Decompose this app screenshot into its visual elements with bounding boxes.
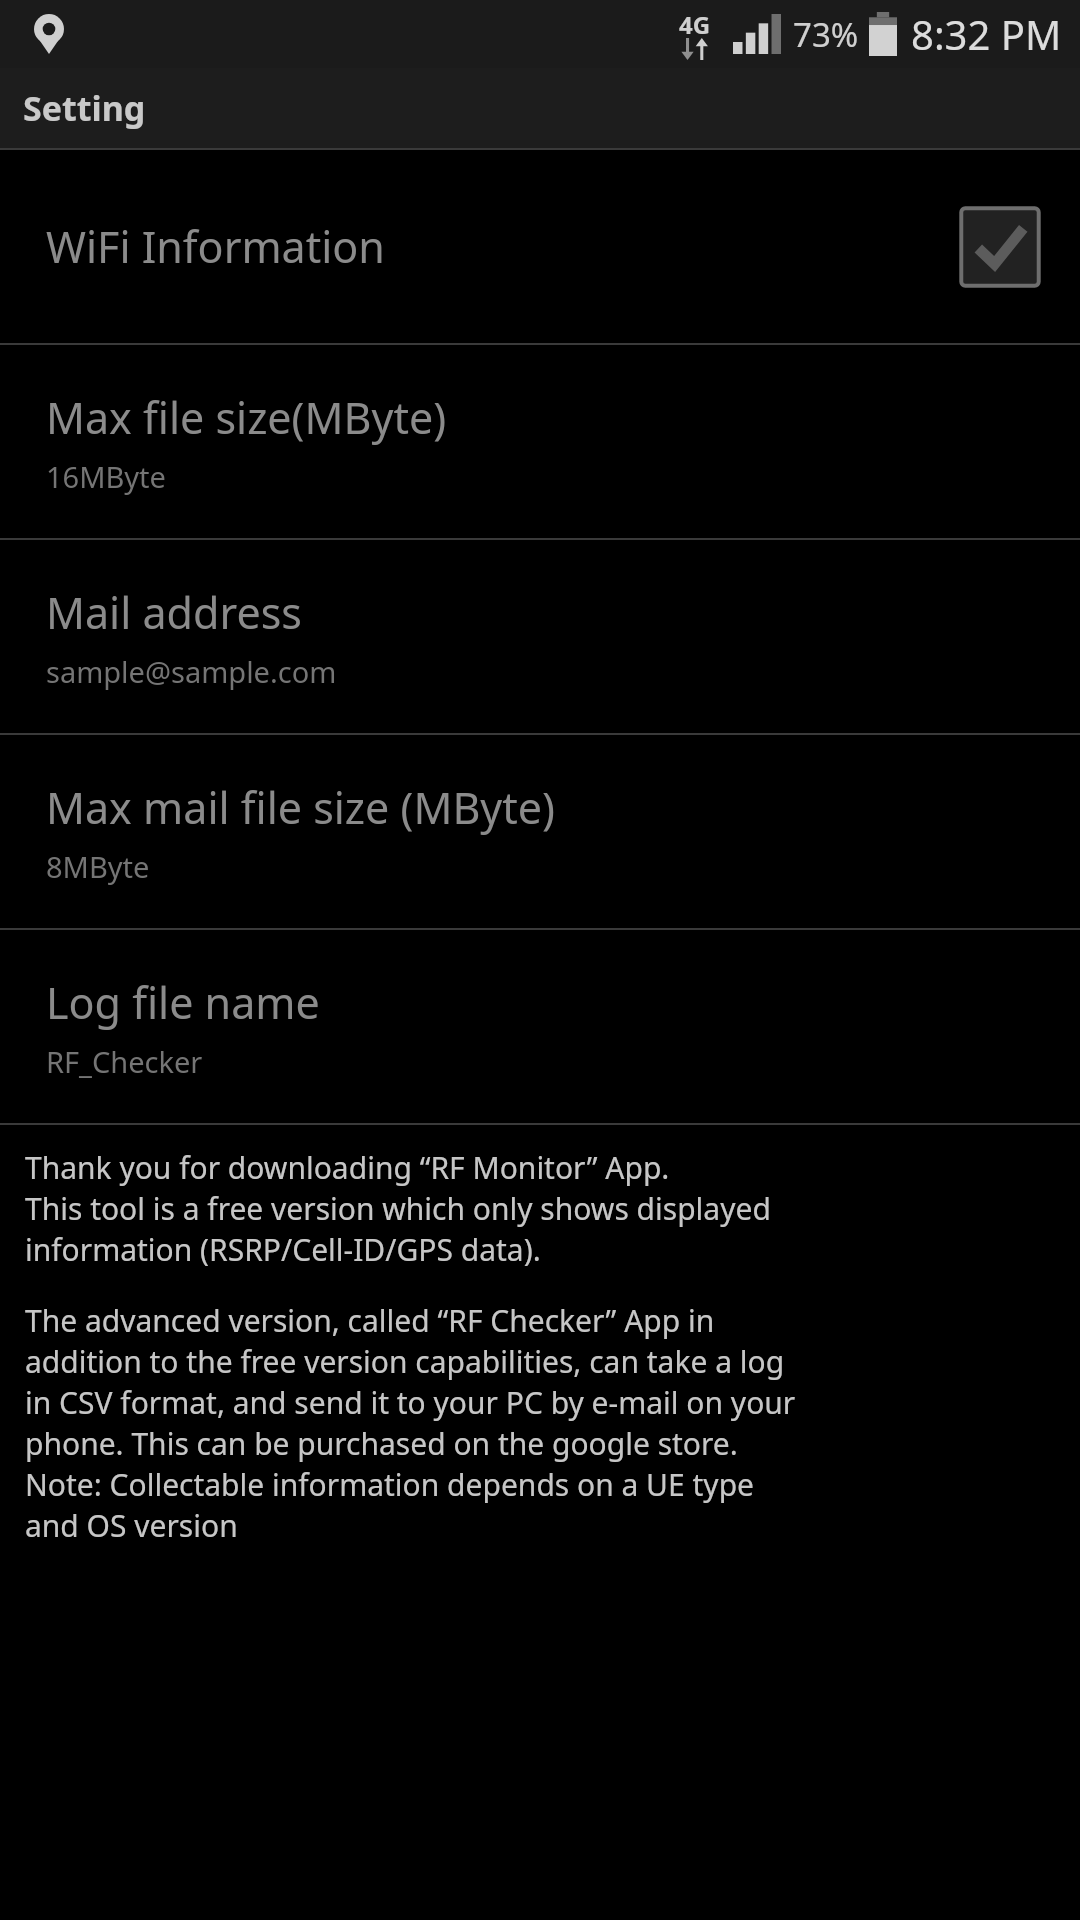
staticText: phone. This can be purchased on the goog…: [25, 1423, 738, 1464]
staticText: addition to the free version capabilitie…: [25, 1341, 785, 1382]
staticText: in CSV format, and send it to your PC by…: [25, 1382, 796, 1423]
staticText: Log file name: [46, 973, 320, 1032]
button[interactable]: Max mail file size (MByte): [0, 735, 1080, 928]
staticText: WiFi Information: [46, 217, 385, 276]
staticText: Max mail file size (MByte): [46, 778, 555, 837]
staticText: Setting: [23, 85, 146, 131]
button[interactable]: Max file size(MByte): [0, 345, 1080, 538]
staticText: and OS version: [25, 1505, 238, 1546]
staticText: This tool is a free version which only s…: [25, 1188, 771, 1229]
staticText: Mail address: [46, 583, 302, 642]
staticText: sample@sample.com: [46, 652, 337, 691]
staticText: 4G: [679, 8, 711, 41]
staticText: Thank you for downloading “RF Monitor” A…: [25, 1147, 670, 1188]
button[interactable]: WiFi Information: [0, 150, 1080, 343]
staticText: information (RSRP/Cell-ID/GPS data).: [25, 1229, 541, 1270]
button[interactable]: Mail address: [0, 540, 1080, 733]
staticText: Max file size(MByte): [46, 388, 447, 447]
button[interactable]: WiFi Information toggle: [956, 203, 1044, 291]
staticText: The advanced version, called “RF Checker…: [25, 1300, 715, 1341]
staticText: 73%: [793, 12, 859, 57]
staticText: RF_Checker: [46, 1042, 203, 1081]
staticText: 16MByte: [46, 457, 166, 496]
staticText: Note: Collectable information depends on…: [25, 1464, 755, 1505]
staticText: 8MByte: [46, 847, 150, 886]
staticText: 8:32 PM: [911, 7, 1062, 61]
button[interactable]: Log file name: [0, 930, 1080, 1123]
